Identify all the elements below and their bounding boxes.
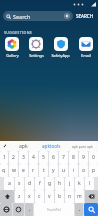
staticText: h (58, 180, 62, 187)
button[interactable]: Email (73, 37, 98, 58)
staticText: f (39, 180, 41, 187)
button[interactable]: apktools (37, 141, 66, 151)
staticText: SafetyApp (51, 53, 70, 58)
staticText: l (89, 180, 91, 187)
button[interactable]: Period (75, 203, 83, 216)
button[interactable]: a (4, 177, 14, 190)
staticText: apk (19, 143, 28, 150)
staticText: t (43, 167, 45, 174)
staticText: 1 (3, 154, 6, 161)
staticText: g (48, 180, 52, 187)
staticText: 3 (22, 154, 25, 161)
staticText: s (18, 180, 21, 187)
staticText: v (48, 193, 51, 200)
staticText: x (28, 193, 31, 200)
staticText: k (78, 180, 81, 187)
staticText: d (28, 180, 32, 187)
button[interactable]: SafetyApp (48, 37, 73, 58)
button[interactable]: g (45, 177, 54, 190)
button[interactable]: m (75, 190, 84, 203)
staticText: o (82, 167, 86, 174)
button[interactable]: t (39, 164, 48, 177)
button[interactable]: Emoji (13, 203, 24, 216)
staticText: n (68, 193, 72, 200)
button[interactable]: 3 (19, 151, 28, 164)
staticText: Settings (29, 53, 44, 58)
staticText: y (52, 167, 55, 174)
button[interactable]: Shift (0, 190, 14, 203)
button[interactable]: Settings (24, 37, 48, 58)
staticText: Gallery (6, 53, 19, 58)
button[interactable]: 1 (0, 151, 8, 164)
staticText: TouchPal (47, 208, 61, 212)
button[interactable]: u (59, 164, 68, 177)
button[interactable]: s (15, 177, 24, 190)
button[interactable]: n (65, 190, 74, 203)
button[interactable]: apk pure apk (66, 141, 98, 151)
staticText: Search (13, 13, 31, 20)
button[interactable]: o (79, 164, 88, 177)
staticText: 5 (42, 154, 45, 161)
button[interactable]: 2 (9, 151, 18, 164)
staticText: m (77, 193, 82, 200)
staticText: z (18, 193, 21, 200)
staticText: 7 (62, 154, 65, 161)
staticText: j (69, 180, 71, 187)
staticText: 8 (72, 154, 75, 161)
button[interactable]: Comma (25, 203, 33, 216)
staticText: w (12, 167, 16, 174)
staticText: 6 (52, 154, 55, 161)
button[interactable]: 4 (29, 151, 38, 164)
button[interactable]: Clear (64, 13, 70, 19)
button[interactable]: apk (10, 141, 37, 151)
button[interactable]: 0 (89, 151, 98, 164)
button[interactable]: h (55, 177, 64, 190)
button[interactable]: Search (84, 203, 98, 216)
button[interactable]: x (25, 190, 34, 203)
button[interactable]: w (9, 164, 18, 177)
staticText: apktools (42, 143, 61, 149)
button[interactable]: Symbols (0, 203, 12, 216)
button[interactable]: f (35, 177, 44, 190)
staticText: SUGGESTIONS (4, 30, 33, 35)
button[interactable]: y (49, 164, 58, 177)
button[interactable]: l (85, 177, 94, 190)
button[interactable]: 9 (79, 151, 88, 164)
staticText: 2 (12, 154, 15, 161)
staticText: SEARCH (76, 13, 93, 19)
button[interactable]: j (65, 177, 74, 190)
button[interactable]: c (35, 190, 44, 203)
button[interactable]: z (15, 190, 24, 203)
button[interactable]: 5 (39, 151, 48, 164)
button[interactable]: b (55, 190, 64, 203)
staticText: p (92, 167, 96, 174)
button[interactable]: q (0, 164, 8, 177)
button[interactable]: 6 (49, 151, 58, 164)
button[interactable]: Keyboard menu (0, 141, 10, 151)
staticText: e (22, 167, 25, 174)
button[interactable]: Search (3, 11, 73, 21)
button[interactable]: i (69, 164, 78, 177)
staticText: i (73, 167, 75, 174)
staticText: a (8, 180, 11, 187)
button[interactable]: 7 (59, 151, 68, 164)
button[interactable]: SEARCH (73, 11, 96, 21)
staticText: b (58, 193, 62, 200)
staticText: 4 (32, 154, 35, 161)
button[interactable]: Space (34, 203, 74, 216)
button[interactable]: Backspace (85, 190, 98, 203)
button[interactable]: r (29, 164, 38, 177)
staticText: u (62, 167, 66, 174)
button[interactable]: d (25, 177, 34, 190)
staticText: apk pure apk (72, 144, 93, 149)
button[interactable]: e (19, 164, 28, 177)
button[interactable]: 8 (69, 151, 78, 164)
button[interactable]: v (45, 190, 54, 203)
button[interactable]: k (75, 177, 84, 190)
staticText: c (38, 193, 41, 200)
button[interactable]: Gallery (0, 37, 24, 58)
staticText: 9 (82, 154, 85, 161)
staticText: q (2, 167, 6, 174)
button[interactable]: p (89, 164, 98, 177)
staticText: 0 (92, 154, 95, 161)
